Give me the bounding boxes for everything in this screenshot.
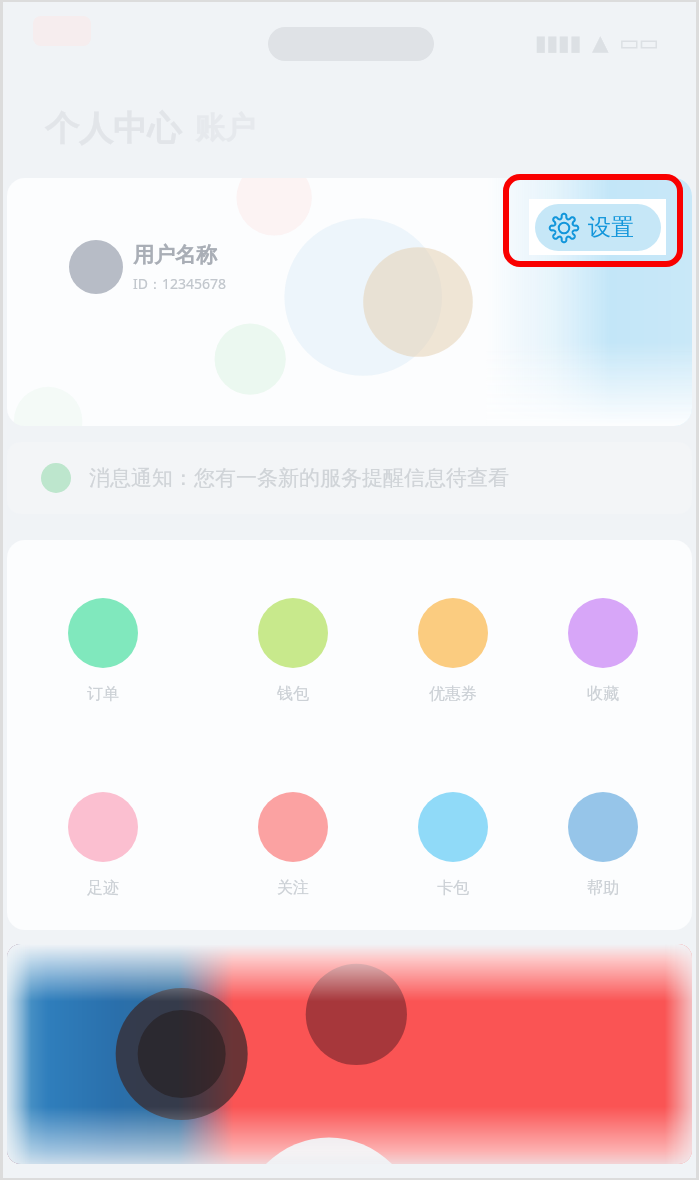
staticText: 个人中心	[45, 107, 181, 150]
staticText: 优惠券	[429, 684, 477, 704]
staticText: ID：12345678	[133, 274, 227, 293]
button[interactable]: Settings	[535, 204, 661, 251]
button[interactable]: 优惠券	[397, 598, 509, 704]
staticText: 收藏	[587, 684, 619, 704]
staticText: 钱包	[277, 684, 309, 704]
button[interactable]: 消息通知：您有一条新的服务提醒信息待查看	[7, 442, 692, 514]
button[interactable]: 关注	[237, 792, 349, 898]
staticText: 设置	[588, 213, 634, 242]
staticText: 足迹	[87, 878, 119, 898]
button[interactable]	[7, 944, 692, 1164]
other: Settings	[549, 213, 579, 243]
button[interactable]: 钱包	[237, 598, 349, 704]
staticText: 帮助	[587, 878, 619, 898]
staticText: 用户名称	[133, 242, 217, 268]
button[interactable]: 订单	[47, 598, 159, 704]
staticText: 账户	[195, 109, 255, 147]
button[interactable]: 收藏	[547, 598, 659, 704]
button[interactable]: 卡包	[397, 792, 509, 898]
staticText: 消息通知：您有一条新的服务提醒信息待查看	[89, 465, 509, 491]
staticText: 关注	[277, 878, 309, 898]
staticText: ▮▮▮▮ ▲ ▭▭	[535, 28, 659, 57]
button[interactable]: 足迹	[47, 792, 159, 898]
button[interactable]: 帮助	[547, 792, 659, 898]
staticText: 卡包	[437, 878, 469, 898]
staticText: 订单	[87, 684, 119, 704]
